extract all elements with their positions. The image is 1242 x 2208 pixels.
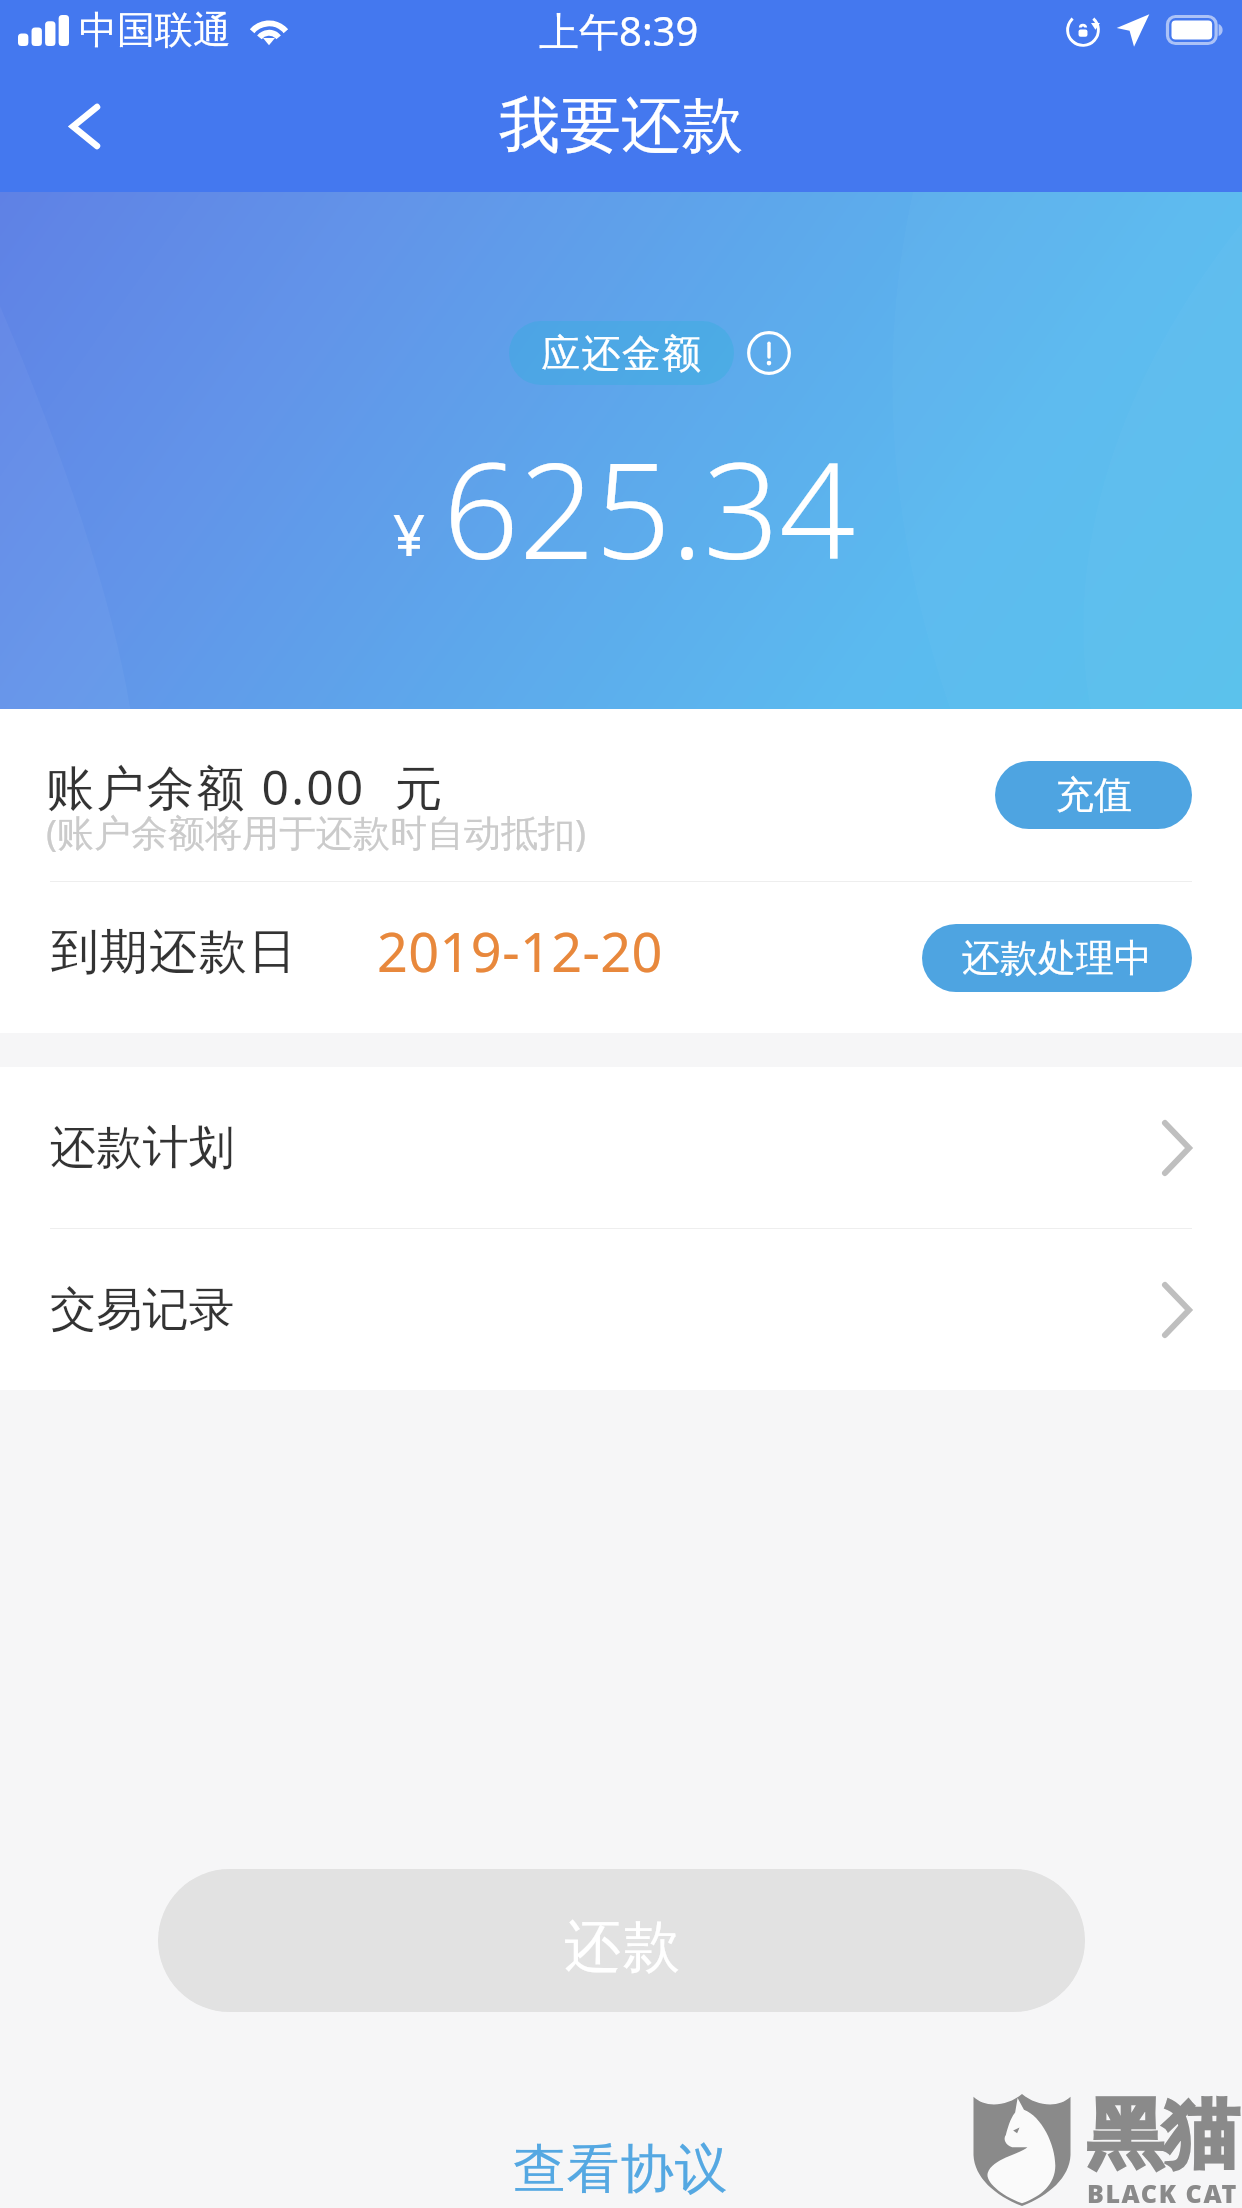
staticText: 账户余额 0.00 元 [46, 754, 446, 820]
staticText: 充值 [1056, 771, 1132, 819]
staticText: 还款计划 [50, 1119, 235, 1177]
staticText: 查看协议 [513, 2136, 729, 2203]
button[interactable]: 金额说明 [746, 330, 792, 376]
staticText: ¥ [393, 496, 426, 572]
button[interactable]: 交易记录 [0, 1229, 1242, 1390]
staticText: 中国联通 [79, 6, 231, 54]
button[interactable]: 还款处理中 [922, 924, 1192, 992]
staticText: 应还金额 [541, 329, 703, 378]
button[interactable]: 查看协议 [513, 2136, 729, 2203]
staticText: 我要还款 [499, 87, 743, 164]
button[interactable]: 还款 [158, 1869, 1085, 2012]
staticText: 交易记录 [50, 1281, 235, 1339]
staticText: 黑猫 [1087, 2087, 1239, 2183]
staticText: BLACK CAT [1087, 2176, 1238, 2208]
staticText: 还款 [563, 1911, 681, 1983]
staticText: 到期还款日 [50, 922, 297, 982]
staticText: 上午8:39 [539, 3, 699, 58]
staticText: 还款处理中 [962, 934, 1152, 982]
button[interactable]: 还款计划 [0, 1067, 1242, 1228]
staticText: 625.34 [443, 417, 856, 598]
staticText: 2019-12-20 [377, 914, 663, 988]
staticText: (账户余额将用于还款时自动抵扣) [46, 806, 587, 857]
button[interactable]: 返回 [0, 68, 166, 192]
button[interactable]: 应还金额 [509, 321, 734, 385]
button[interactable]: 充值 [995, 761, 1192, 829]
